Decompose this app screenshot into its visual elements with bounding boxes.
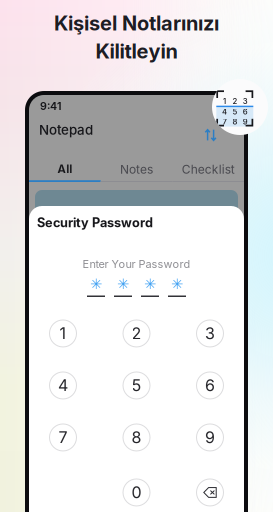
staticText: 6 [243, 107, 248, 116]
staticText: 9 [205, 428, 215, 447]
staticText: Checklist [182, 162, 235, 177]
button[interactable]: 1 [49, 320, 76, 347]
button[interactable]: 2 [123, 320, 150, 347]
button[interactable]: 7 [49, 424, 76, 451]
staticText: 9:41 [40, 99, 62, 112]
button[interactable]: All [29, 158, 101, 182]
staticText: 0 [131, 483, 141, 502]
staticText: 7 [222, 117, 226, 126]
staticText: ✳ [90, 275, 102, 293]
staticText: 5 [131, 376, 141, 395]
staticText: Notepad [39, 122, 93, 138]
button[interactable]: 8 [123, 424, 150, 451]
button[interactable]: Notes [101, 158, 172, 182]
button[interactable]: Checklist [172, 158, 244, 182]
staticText: 8 [131, 428, 141, 447]
button[interactable]: 3 [196, 320, 223, 347]
staticText: ✳ [171, 275, 183, 293]
button[interactable]: 4 [49, 372, 76, 399]
staticText: 3 [205, 324, 215, 343]
button[interactable]: 6 [196, 372, 223, 399]
button[interactable]: 5 [123, 372, 150, 399]
staticText: 7 [58, 428, 67, 447]
staticText: All [57, 162, 72, 176]
staticText: Notes [120, 162, 153, 177]
staticText: 6 [205, 376, 215, 395]
staticText: 4 [222, 107, 227, 116]
staticText: 9 [243, 117, 248, 126]
staticText: 2 [232, 96, 237, 106]
staticText: ✳ [117, 275, 129, 293]
staticText: 1 [223, 96, 226, 106]
staticText: 8 [232, 117, 237, 126]
button[interactable]: 0 [123, 479, 150, 506]
staticText: 4 [58, 376, 68, 395]
button[interactable]: 9 [196, 424, 223, 451]
staticText: ✳ [144, 275, 156, 293]
staticText: Security Password [37, 215, 153, 230]
staticText: Kişisel Notlarınızı [54, 11, 219, 35]
staticText: 1 [59, 324, 66, 343]
staticText: Enter Your Password [82, 257, 190, 270]
staticText: 3 [243, 96, 248, 106]
button[interactable]: Sort [199, 120, 234, 140]
staticText: 2 [131, 324, 141, 343]
button[interactable]: Delete [196, 479, 223, 506]
staticText: Kilitleyin [95, 39, 177, 63]
staticText: 5 [232, 107, 237, 116]
